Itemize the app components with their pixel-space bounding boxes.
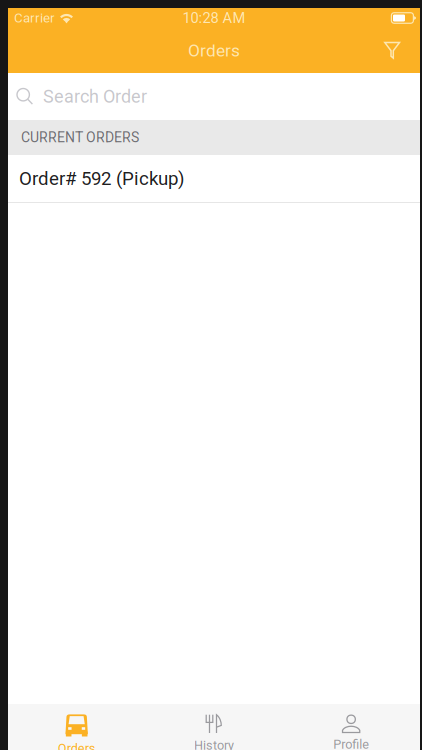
staticText: Profile: [333, 737, 369, 750]
staticText: Carrier: [14, 10, 55, 26]
staticText: 10:28 AM: [182, 9, 245, 27]
button[interactable]: Order# 592 (Pickup): [8, 155, 420, 202]
button[interactable]: History: [145, 704, 283, 750]
staticText: CURRENT ORDERS: [21, 129, 139, 146]
staticText: Order# 592 (Pickup): [19, 168, 184, 189]
button[interactable]: Filter: [374, 28, 420, 73]
staticText: Search Order: [43, 86, 147, 107]
staticText: History: [194, 738, 234, 750]
button[interactable]: Orders: [8, 704, 145, 750]
staticText: Orders: [58, 741, 96, 750]
staticText: Orders: [188, 40, 240, 61]
button[interactable]: Profile: [283, 704, 420, 750]
